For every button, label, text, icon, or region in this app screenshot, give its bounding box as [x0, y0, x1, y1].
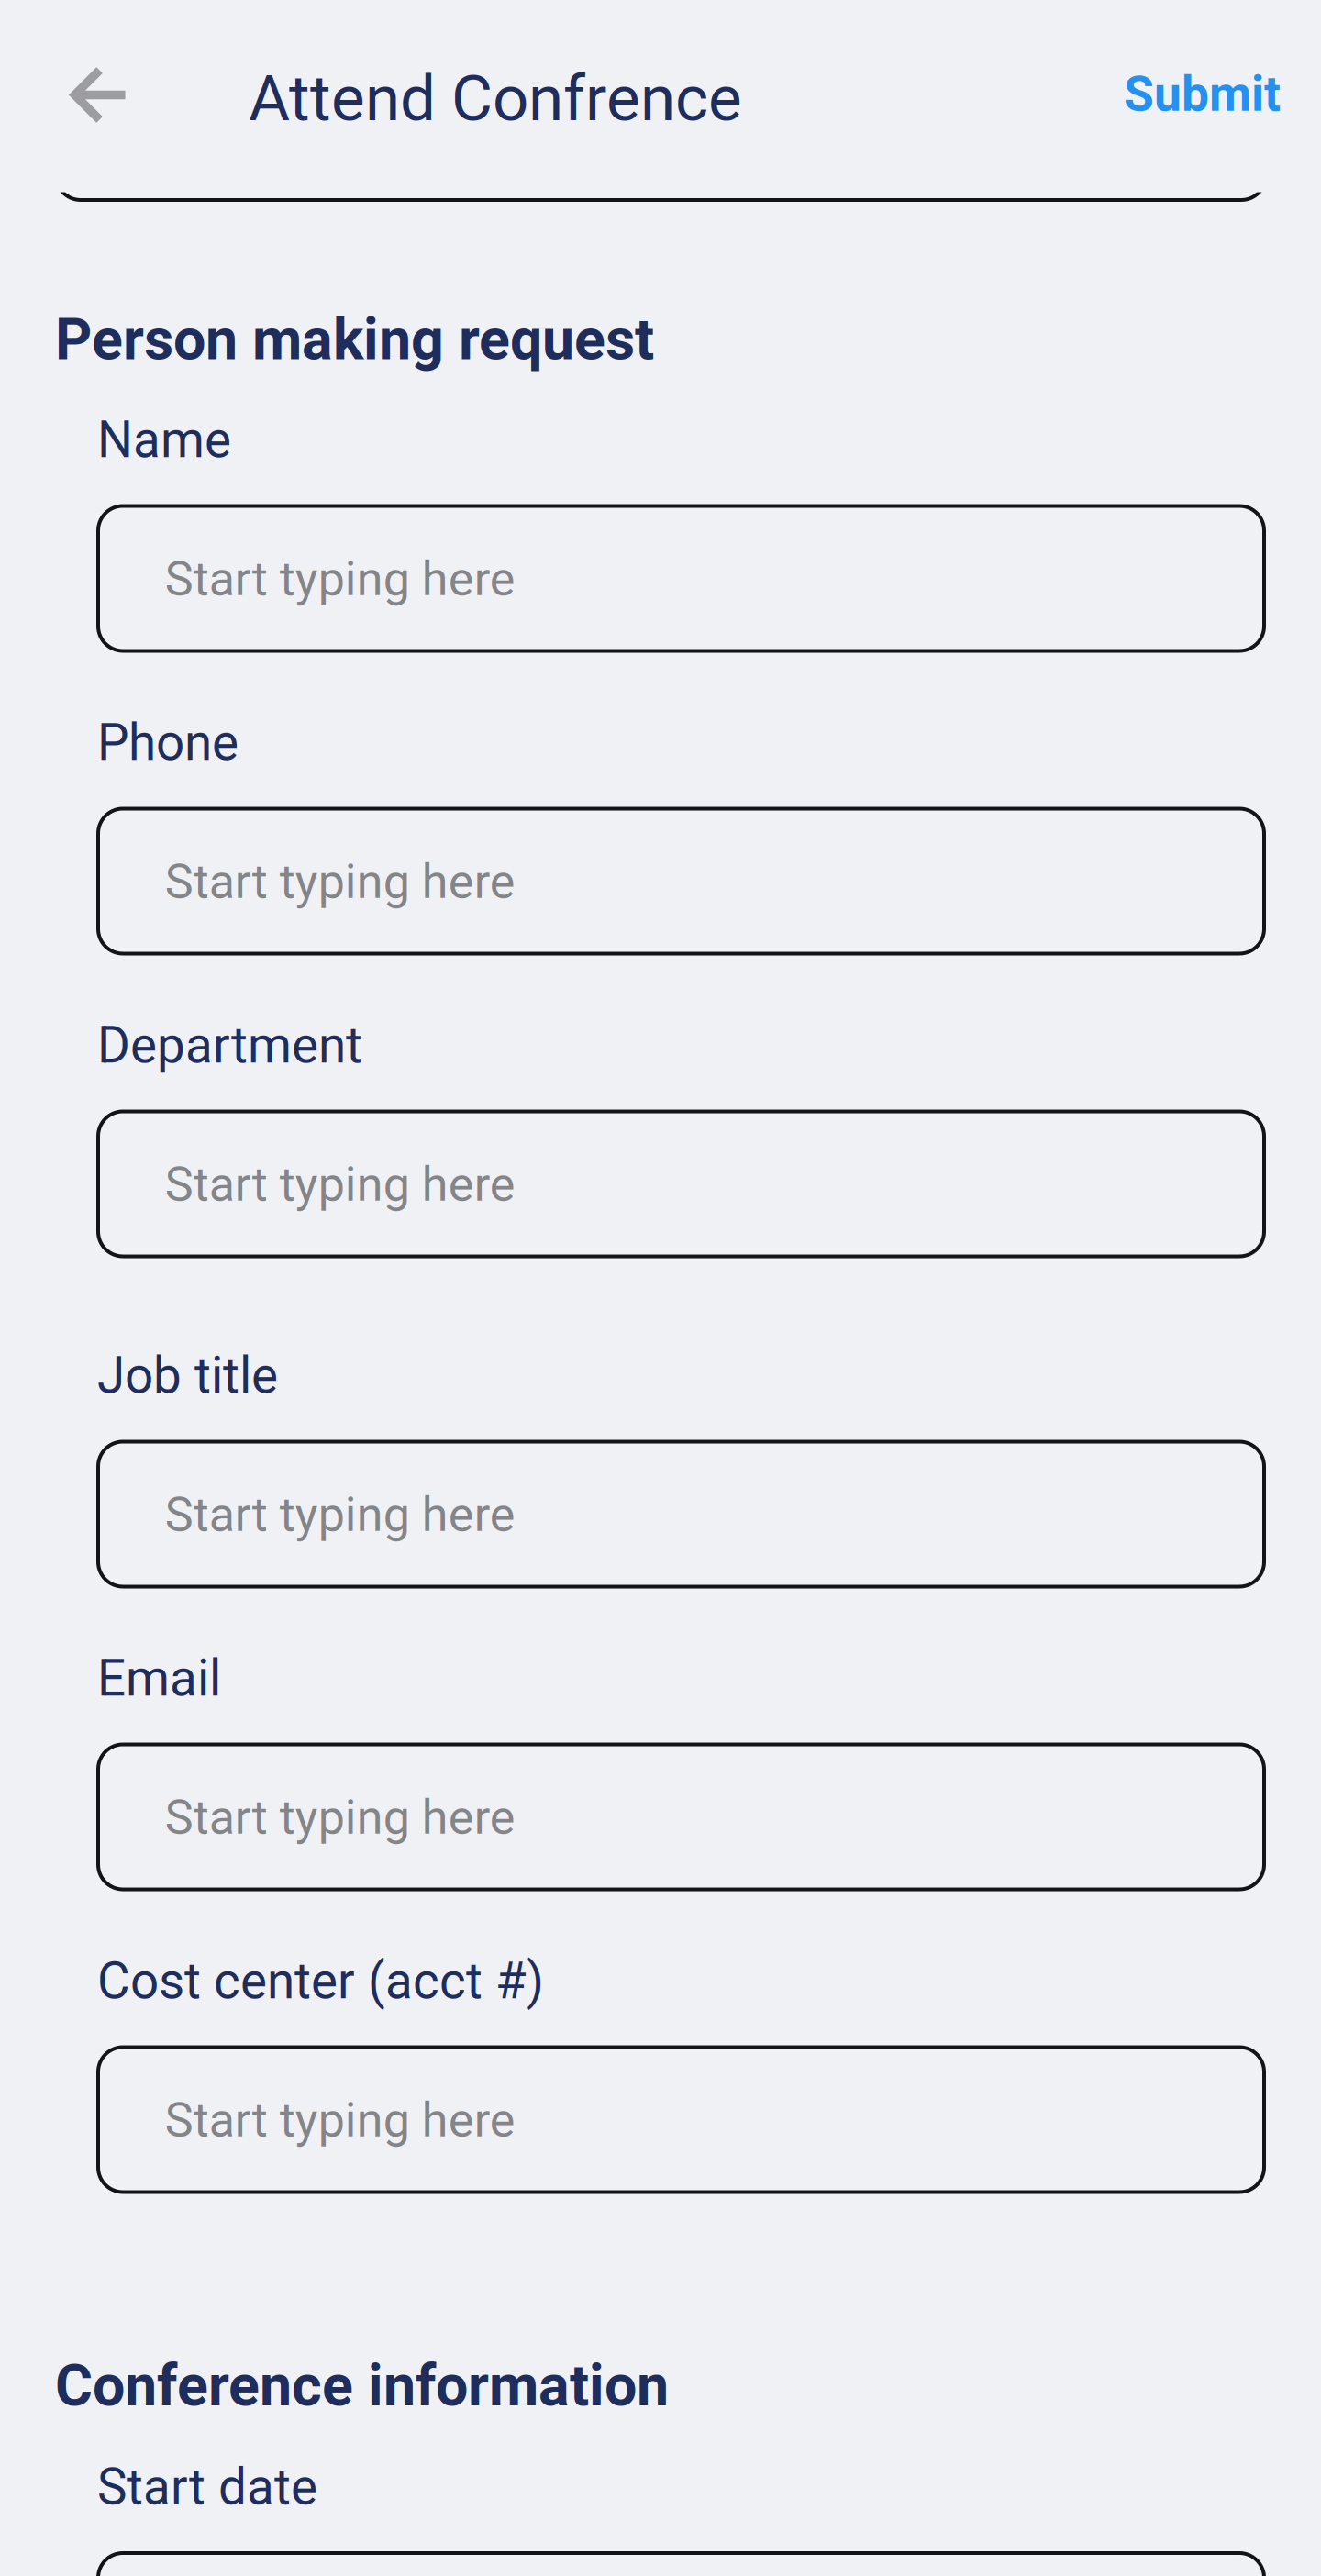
staticText: Name — [97, 411, 231, 469]
staticText: Conference information — [55, 2352, 669, 2419]
staticText: Start typing here — [165, 2092, 515, 2148]
staticText: Person making request — [55, 306, 654, 373]
staticText: Start typing here — [165, 1487, 515, 1542]
staticText: Start typing here — [165, 1789, 515, 1845]
staticText: Phone — [97, 713, 239, 772]
staticText: Job title — [97, 1346, 278, 1405]
button[interactable]: Start typing here — [98, 1111, 1264, 1256]
staticText: Submit — [1124, 66, 1281, 123]
button[interactable]: Submit — [1005, 34, 1281, 154]
staticText: Start typing here — [165, 551, 515, 607]
staticText: Email — [97, 1649, 221, 1708]
staticText: Department — [97, 1016, 362, 1075]
staticText: Attend Confrence — [249, 61, 742, 135]
staticText: Cost center (acct #) — [97, 1952, 544, 2011]
button[interactable]: Start typing here — [98, 506, 1264, 651]
staticText: Start date — [97, 2458, 317, 2516]
button[interactable]: Back — [34, 35, 162, 155]
staticText: Start typing here — [165, 854, 515, 909]
button[interactable]: Start typing here — [98, 2553, 1264, 2576]
staticText: Start typing here — [165, 1156, 515, 1212]
button[interactable]: Start typing here — [98, 2047, 1264, 2192]
button[interactable]: Start typing here — [98, 1442, 1264, 1587]
button[interactable]: Start typing here — [98, 809, 1264, 954]
button[interactable]: Start typing here — [98, 1744, 1264, 1889]
